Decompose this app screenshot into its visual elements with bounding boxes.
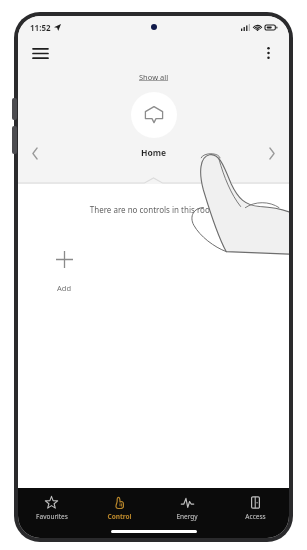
staticText: Energy [176, 512, 198, 521]
button[interactable]: Previous home [24, 144, 46, 162]
button[interactable]: More options [253, 38, 283, 68]
button[interactable]: Energy [153, 494, 221, 526]
button[interactable]: Menu [24, 38, 56, 68]
staticText: Add [57, 283, 72, 293]
staticText: Show all [139, 72, 169, 82]
staticText: 11:52 [30, 22, 51, 33]
button[interactable]: Favourites [18, 494, 85, 526]
staticText: Access [245, 512, 266, 521]
button[interactable]: Next home [261, 144, 283, 162]
button[interactable]: Control [85, 494, 153, 526]
button[interactable]: Home [131, 92, 177, 138]
button[interactable]: Show all [131, 70, 177, 84]
staticText: Favourites [36, 512, 68, 521]
button[interactable]: Add control [44, 239, 84, 279]
staticText: There are no controls in this room [18, 204, 289, 215]
button[interactable]: Access [221, 494, 289, 526]
staticText: Control [107, 512, 132, 521]
staticText: Home [141, 147, 167, 159]
